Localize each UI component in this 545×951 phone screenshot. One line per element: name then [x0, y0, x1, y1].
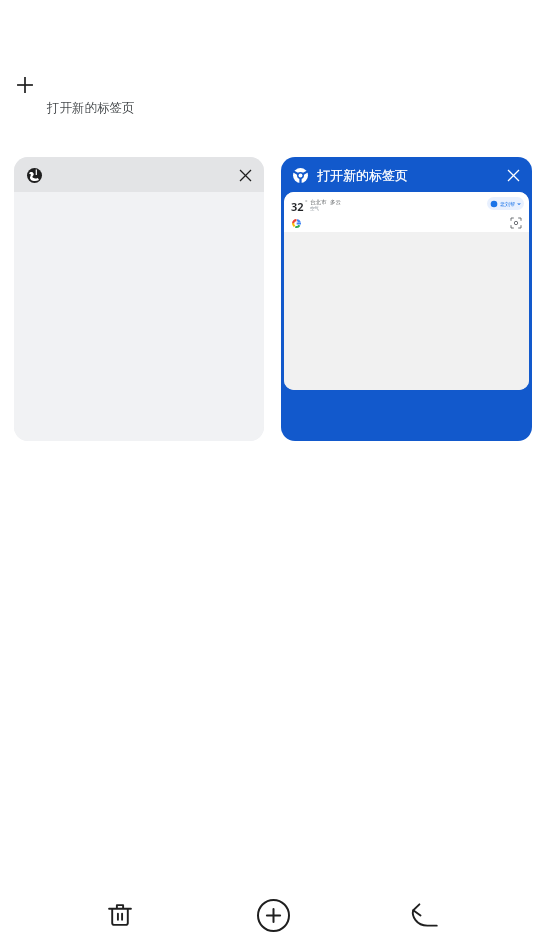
staticText: 老刘帮: [500, 201, 515, 207]
button[interactable]: Delete: [88, 883, 152, 947]
button[interactable]: Close tab: [233, 163, 257, 187]
other: Lens: [511, 218, 521, 228]
staticText: 台北市: [310, 199, 327, 206]
staticText: 空气: [310, 206, 319, 212]
button[interactable]: 老刘帮: [487, 197, 524, 210]
button[interactable]: 打开新的标签页: [281, 157, 532, 441]
other: New tab: [14, 74, 36, 96]
staticText: 打开新的标签页: [47, 100, 135, 116]
staticText: 打开新的标签页: [317, 167, 408, 183]
button[interactable]: Close tab: [14, 157, 264, 441]
button[interactable]: New tab: [8, 72, 108, 118]
button[interactable]: 32: [284, 192, 529, 214]
button[interactable]: Add: [241, 883, 305, 947]
button[interactable]: Lens: [284, 214, 529, 232]
staticText: 32: [291, 199, 304, 214]
button[interactable]: Close tab: [501, 163, 525, 187]
staticText: 多云: [330, 199, 341, 206]
button[interactable]: Back: [393, 883, 457, 947]
staticText: °: [305, 198, 308, 206]
